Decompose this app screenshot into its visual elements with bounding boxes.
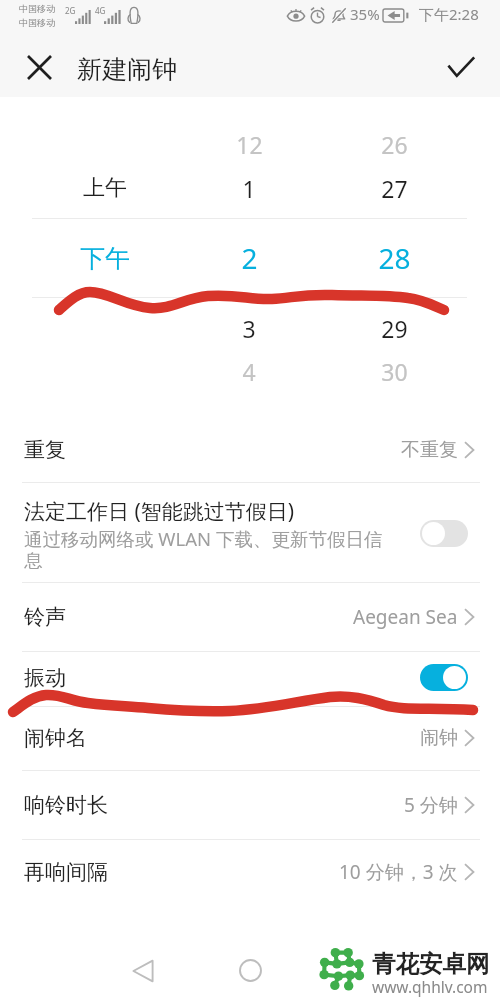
button[interactable]: Back: [121, 949, 164, 992]
button[interactable]: Close: [19, 47, 59, 87]
staticText: 28: [378, 239, 411, 277]
staticText: 响铃时长: [24, 792, 108, 818]
button[interactable]: Home: [229, 949, 272, 992]
staticText: 26: [381, 129, 408, 160]
staticText: 5 分钟: [404, 792, 458, 818]
staticText: 闹钟名: [24, 725, 87, 751]
button[interactable]: 闹钟名: [0, 705, 500, 771]
button[interactable]: Toggle off: [420, 520, 468, 547]
button[interactable]: 振动: [0, 651, 500, 705]
staticText: 中国移动: [19, 17, 55, 28]
staticText: 闹钟: [420, 726, 458, 750]
staticText: 27: [381, 173, 408, 204]
staticText: 重复: [24, 437, 66, 463]
staticText: 10 分钟，3 次: [339, 859, 458, 885]
staticText: 29: [381, 313, 408, 344]
staticText: 新建闹钟: [77, 54, 177, 85]
staticText: 振动: [24, 665, 66, 691]
staticText: 30: [381, 356, 408, 387]
button[interactable]: 再响间隔: [0, 839, 500, 905]
button[interactable]: 响铃时长: [0, 772, 500, 838]
staticText: www.qhhlv.com: [372, 976, 488, 997]
button[interactable]: 铃声: [0, 584, 500, 650]
button[interactable]: 重复: [0, 417, 500, 483]
staticText: 再响间隔: [24, 859, 108, 885]
staticText: 2G: [65, 5, 76, 16]
staticText: 下午2:28: [419, 4, 479, 24]
staticText: 2: [241, 239, 258, 277]
staticText: 35%: [350, 4, 380, 24]
staticText: 4G: [95, 5, 106, 16]
button[interactable]: Confirm: [441, 47, 481, 87]
staticText: 上午: [83, 174, 127, 202]
staticText: Aegean Sea: [353, 604, 458, 630]
staticText: 3: [242, 313, 256, 344]
staticText: 中国移动: [19, 3, 55, 14]
staticText: 下午: [80, 243, 130, 274]
staticText: 1: [242, 173, 256, 204]
staticText: 铃声: [24, 604, 66, 630]
staticText: 不重复: [401, 438, 458, 462]
staticText: 青花安卓网: [372, 949, 490, 979]
button[interactable]: 法定工作日 (智能跳过节假日): [0, 482, 500, 582]
staticText: 通过移动网络或 WLAN 下载、更新节假日信息: [24, 526, 398, 573]
button[interactable]: Toggle on: [420, 664, 468, 691]
staticText: 12: [236, 129, 263, 160]
staticText: 法定工作日 (智能跳过节假日): [24, 497, 295, 526]
staticText: 4: [242, 356, 256, 387]
